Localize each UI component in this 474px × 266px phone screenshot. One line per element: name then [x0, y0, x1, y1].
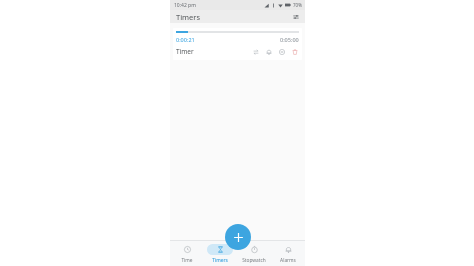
- staticText: 10:42 pm: [174, 2, 196, 9]
- staticText: Alarms: [280, 257, 296, 264]
- button[interactable]: Stopwatch: [237, 241, 271, 266]
- button[interactable]: Reset: [251, 47, 260, 56]
- staticText: 0:05:00: [280, 36, 299, 43]
- staticText: Stopwatch: [242, 257, 266, 264]
- button[interactable]: 0:00:21: [173, 28, 302, 60]
- button[interactable]: Alarms: [271, 241, 305, 266]
- staticText: Timer: [176, 47, 194, 56]
- staticText: Timers: [176, 12, 201, 22]
- button[interactable]: More options: [291, 12, 301, 22]
- staticText: 0:00:21: [176, 36, 195, 43]
- button[interactable]: Alarm sound: [264, 47, 273, 56]
- button[interactable]: Delete: [290, 47, 299, 56]
- staticText: 70%: [293, 2, 302, 8]
- button[interactable]: Add timer: [225, 224, 251, 250]
- staticText: Time: [181, 257, 193, 264]
- button[interactable]: Pause: [277, 47, 286, 56]
- staticText: Timers: [212, 257, 228, 264]
- button[interactable]: Timers: [203, 241, 237, 266]
- button[interactable]: Time: [170, 241, 203, 266]
